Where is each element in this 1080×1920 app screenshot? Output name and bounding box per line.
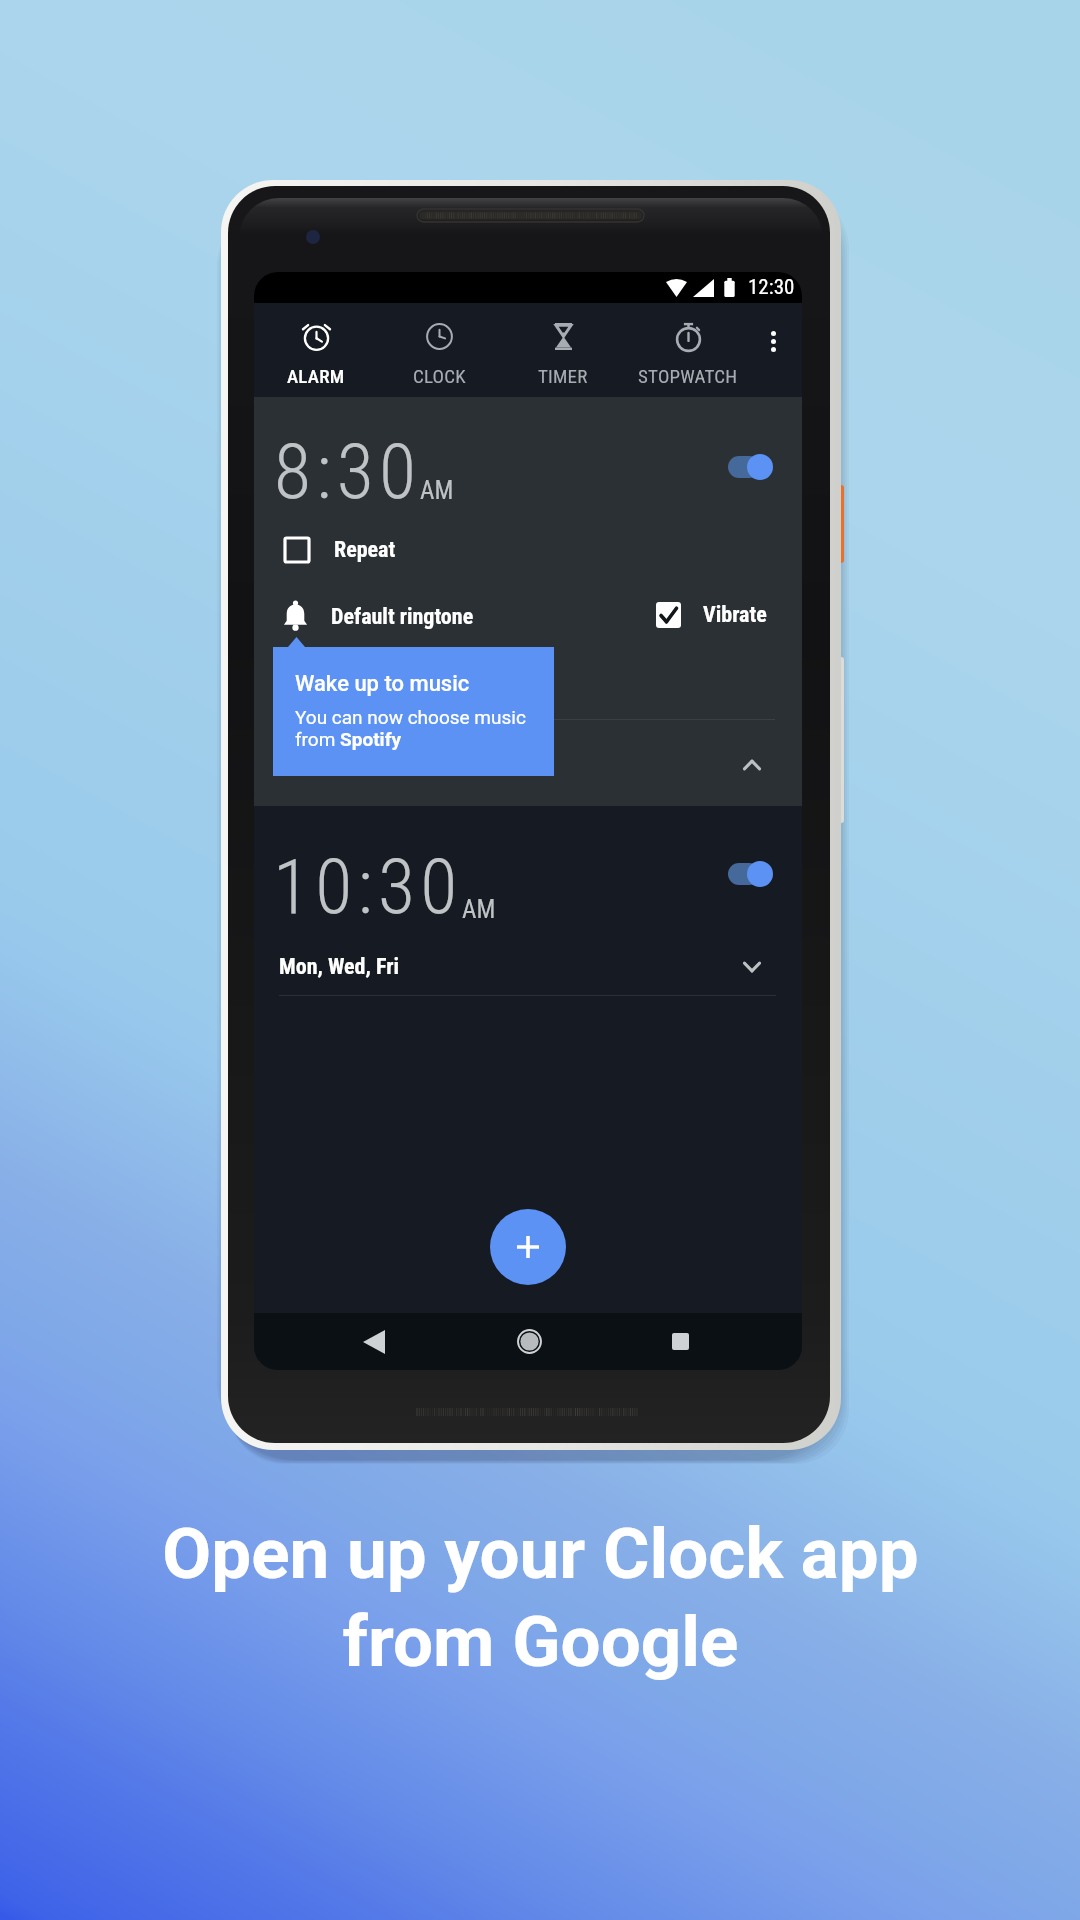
staticText: AM: [462, 895, 496, 924]
staticText: Vibrate: [703, 602, 767, 628]
staticText: CLOCK: [413, 365, 466, 387]
button[interactable]: Repeat: [285, 537, 396, 563]
button[interactable]: Home: [483, 1313, 575, 1370]
staticText: STOPWATCH: [638, 365, 738, 387]
button[interactable]: Collapse alarm: [730, 743, 774, 787]
button[interactable]: CLOCK: [377, 303, 501, 397]
button[interactable]: STOPWATCH: [626, 303, 750, 397]
staticText: Repeat: [334, 537, 396, 563]
button[interactable]: Alarm 8:30 AM enabled: [728, 454, 773, 480]
staticText: Mon, Wed, Fri: [279, 954, 399, 980]
button[interactable]: Expand alarm: [730, 945, 774, 989]
button[interactable]: Default ringtone: [279, 600, 474, 633]
staticText: ALARM: [287, 365, 345, 387]
staticText: 10:30: [273, 842, 463, 931]
staticText: 12:30: [748, 275, 795, 300]
staticText: TIMER: [538, 365, 588, 387]
staticText: AM: [420, 476, 454, 505]
button[interactable]: Alarm 10:30 AM enabled: [728, 861, 773, 887]
button[interactable]: Recent apps: [634, 1313, 726, 1370]
button[interactable]: ALARM: [254, 303, 378, 397]
button[interactable]: Add alarm: [490, 1209, 566, 1285]
staticText: Open up your Clock app from Google: [162, 1512, 919, 1684]
button[interactable]: Back: [328, 1313, 420, 1370]
staticText: You can now choose music from Spotify: [295, 706, 526, 751]
staticText: Wake up to music: [295, 671, 470, 697]
button[interactable]: Wake up to music: [273, 647, 554, 776]
staticText: 8:30: [274, 427, 422, 516]
staticText: Default ringtone: [331, 604, 474, 630]
button[interactable]: TIMER: [501, 303, 625, 397]
button[interactable]: More options: [749, 303, 797, 397]
button[interactable]: Vibrate: [656, 602, 767, 628]
